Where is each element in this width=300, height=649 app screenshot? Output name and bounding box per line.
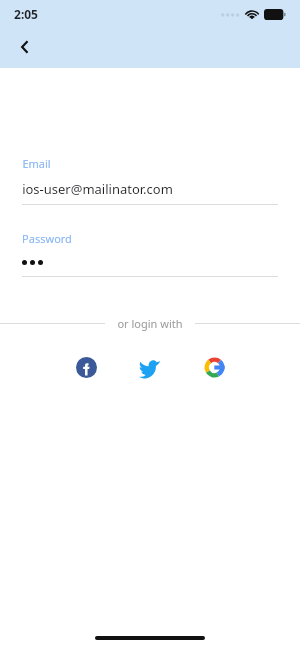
staticText: Password: [22, 231, 72, 246]
staticText: Email: [22, 156, 51, 171]
staticText: ios-user@mailinator.com: [22, 180, 173, 198]
button[interactable]: Login with Google: [194, 347, 234, 387]
button[interactable]: Login with Facebook: [66, 347, 106, 387]
staticText: or login with: [117, 316, 183, 331]
button[interactable]: Back: [8, 30, 42, 64]
button[interactable]: Login with Twitter: [130, 347, 170, 387]
staticText: 2:05: [14, 6, 38, 22]
